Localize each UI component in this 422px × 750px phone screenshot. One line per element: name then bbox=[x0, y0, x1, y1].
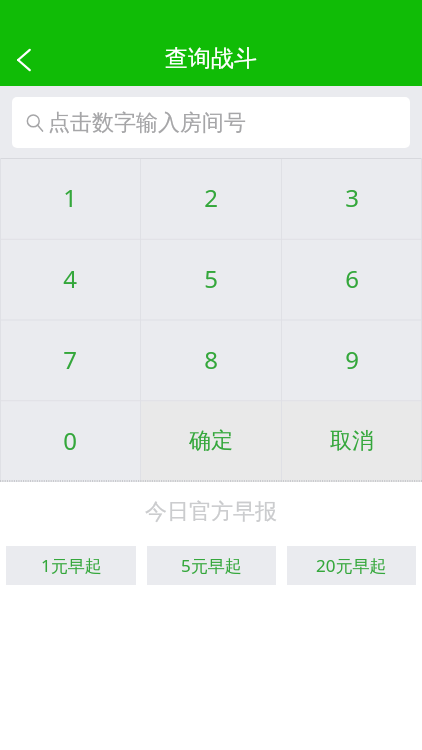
button[interactable]: 5元早起 bbox=[147, 546, 276, 585]
button[interactable]: Back bbox=[0, 36, 48, 84]
button[interactable]: 2 bbox=[141, 158, 281, 239]
staticText: 1元早起 bbox=[41, 554, 102, 577]
button[interactable]: 4 bbox=[0, 239, 140, 320]
staticText: 今日官方早报 bbox=[145, 498, 277, 526]
staticText: 0 bbox=[63, 424, 77, 457]
button[interactable]: 6 bbox=[282, 239, 422, 320]
button[interactable]: 取消 bbox=[282, 401, 422, 482]
button[interactable]: 9 bbox=[282, 320, 422, 401]
staticText: 5元早起 bbox=[181, 554, 242, 577]
staticText: 点击数字输入房间号 bbox=[48, 109, 246, 137]
button[interactable]: 3 bbox=[282, 158, 422, 239]
staticText: 4 bbox=[63, 262, 77, 295]
staticText: 2 bbox=[204, 181, 218, 214]
staticText: 20元早起 bbox=[316, 554, 387, 577]
button[interactable]: 1 bbox=[0, 158, 140, 239]
staticText: 5 bbox=[204, 262, 218, 295]
staticText: 7 bbox=[63, 343, 77, 376]
button[interactable]: 点击数字输入房间号 bbox=[12, 97, 410, 148]
button[interactable]: 20元早起 bbox=[287, 546, 416, 585]
staticText: 6 bbox=[345, 262, 359, 295]
button[interactable]: 5 bbox=[141, 239, 281, 320]
staticText: 9 bbox=[345, 343, 359, 376]
button[interactable]: 确定 bbox=[141, 401, 281, 482]
button[interactable]: 8 bbox=[141, 320, 281, 401]
staticText: 取消 bbox=[330, 427, 374, 455]
staticText: 3 bbox=[345, 181, 359, 214]
staticText: 8 bbox=[204, 343, 218, 376]
button[interactable]: 0 bbox=[0, 401, 140, 482]
staticText: 确定 bbox=[189, 427, 233, 455]
staticText: 查询战斗 bbox=[165, 44, 257, 73]
button[interactable]: 1元早起 bbox=[6, 546, 136, 585]
button[interactable]: 7 bbox=[0, 320, 140, 401]
staticText: 1 bbox=[63, 181, 77, 214]
